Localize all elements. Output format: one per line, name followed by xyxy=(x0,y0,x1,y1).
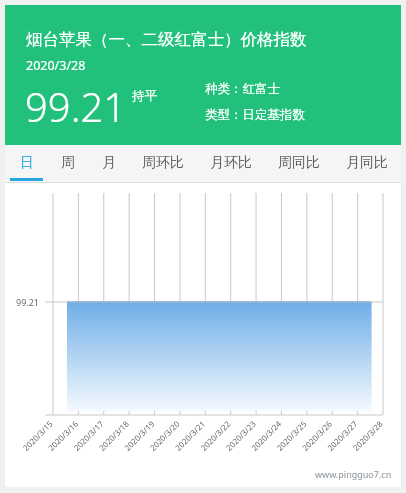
staticText: 99.21 xyxy=(25,79,127,133)
button[interactable]: 周同比 xyxy=(265,145,333,183)
staticText: 月同比 xyxy=(346,154,388,172)
staticText: 日 xyxy=(20,154,34,172)
button[interactable]: 月 xyxy=(88,145,129,183)
staticText: 种类：红富士 xyxy=(205,81,280,97)
button[interactable]: 周 xyxy=(47,145,88,183)
staticText: 持平 xyxy=(132,88,157,104)
staticText: 月环比 xyxy=(210,154,252,172)
staticText: 类型：日定基指数 xyxy=(205,107,305,123)
staticText: 周同比 xyxy=(278,154,320,172)
staticText: 2020/3/28 xyxy=(26,57,86,74)
staticText: 月 xyxy=(102,154,116,172)
button[interactable]: 日 xyxy=(5,145,47,183)
staticText: 烟台苹果（一、二级红富士）价格指数 xyxy=(26,29,307,50)
button[interactable]: 月同比 xyxy=(333,145,401,183)
button[interactable]: 月环比 xyxy=(197,145,265,183)
staticText: 周环比 xyxy=(142,154,184,172)
staticText: www.pingguo7.cn xyxy=(315,468,392,480)
button[interactable]: 周环比 xyxy=(129,145,197,183)
staticText: 周 xyxy=(61,154,75,172)
